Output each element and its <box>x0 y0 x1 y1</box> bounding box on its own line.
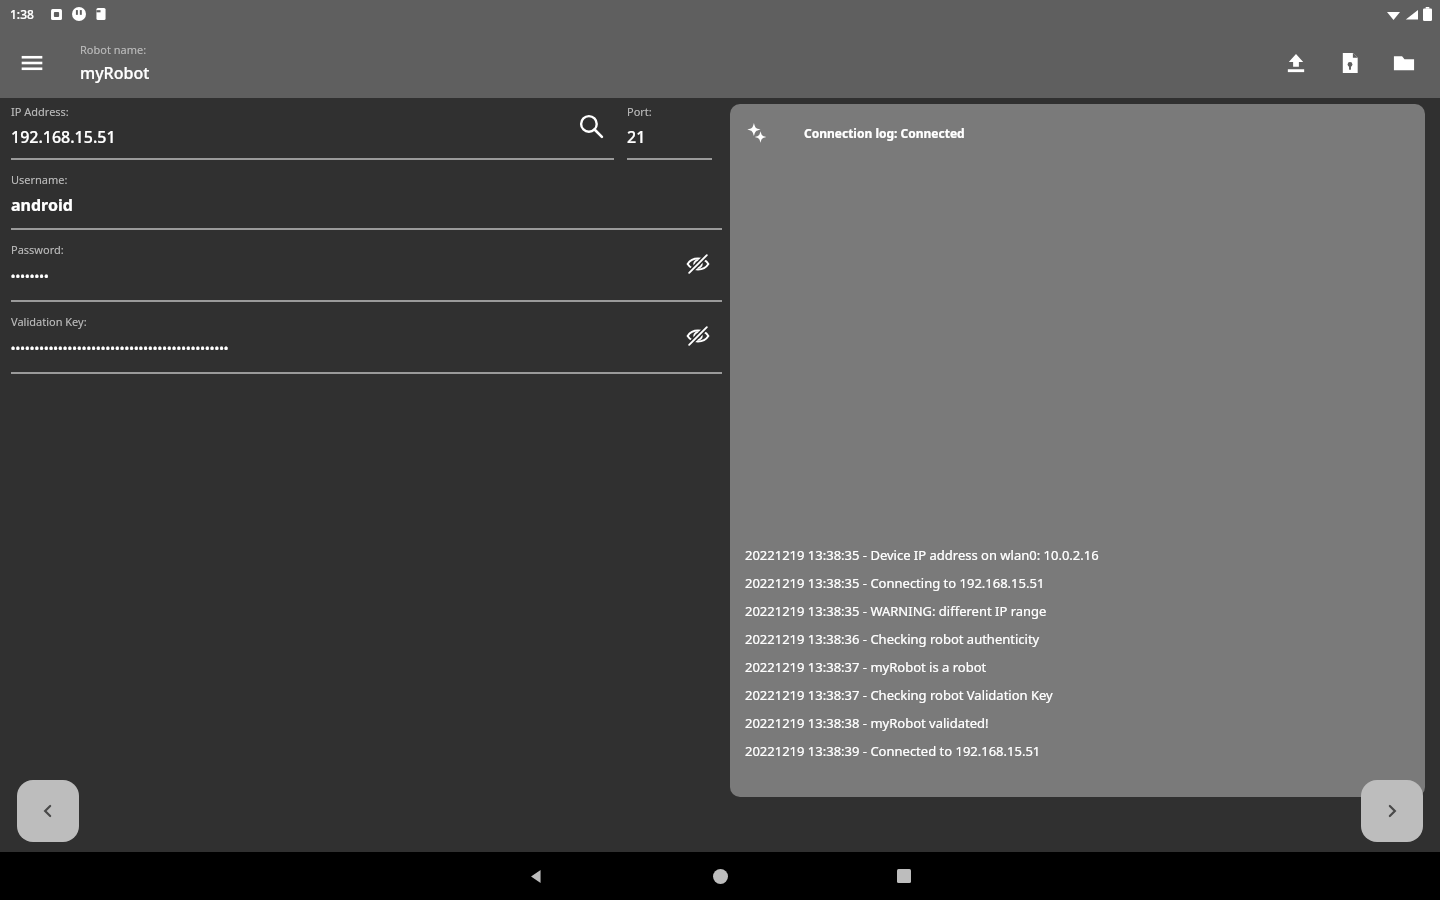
button[interactable]: Previous <box>17 780 79 842</box>
staticText: 1:38 <box>10 6 34 22</box>
staticText: 20221219 13:38:35 - WARNING: different I… <box>745 602 1047 620</box>
button[interactable]: Open folder <box>1380 39 1428 87</box>
staticText: Validation Key: <box>11 314 87 329</box>
staticText: 20221219 13:38:36 - Checking robot authe… <box>745 630 1040 648</box>
button[interactable]: Home <box>628 852 812 900</box>
button[interactable]: Upload <box>1272 39 1320 87</box>
staticText: ••••••••••••••••••••••••••••••••••••••••… <box>11 340 229 355</box>
staticText: myRobot <box>80 62 150 84</box>
staticText: 20221219 13:38:37 - myRobot is a robot <box>745 658 987 676</box>
button[interactable]: Recent apps <box>812 852 996 900</box>
staticText: 192.168.15.51 <box>11 126 116 148</box>
button[interactable]: Open navigation menu <box>8 39 56 87</box>
staticText: IP Address: <box>11 104 69 119</box>
button[interactable]: Back <box>444 852 628 900</box>
staticText: 21 <box>627 126 646 148</box>
staticText: 20221219 13:38:39 - Connected to 192.168… <box>745 742 1041 760</box>
staticText: 20221219 13:38:37 - Checking robot Valid… <box>745 686 1053 704</box>
button[interactable]: Search for robots <box>570 105 612 147</box>
button[interactable]: Next <box>1361 780 1423 842</box>
staticText: •••••••• <box>11 268 49 283</box>
button[interactable]: Toggle validation key visibility <box>676 314 720 358</box>
staticText: 20221219 13:38:35 - Device IP address on… <box>745 546 1099 564</box>
button[interactable]: Connection log: Connected <box>730 104 1425 797</box>
staticText: Password: <box>11 242 64 257</box>
staticText: android <box>11 194 73 216</box>
staticText: Connection log: Connected <box>804 125 965 141</box>
staticText: Robot name: <box>80 42 147 57</box>
button[interactable]: Save file <box>1326 39 1374 87</box>
button[interactable]: Toggle password visibility <box>676 242 720 286</box>
staticText: Port: <box>627 104 652 119</box>
staticText: 20221219 13:38:38 - myRobot validated! <box>745 714 989 732</box>
staticText: Username: <box>11 172 68 187</box>
staticText: 20221219 13:38:35 - Connecting to 192.16… <box>745 574 1045 592</box>
